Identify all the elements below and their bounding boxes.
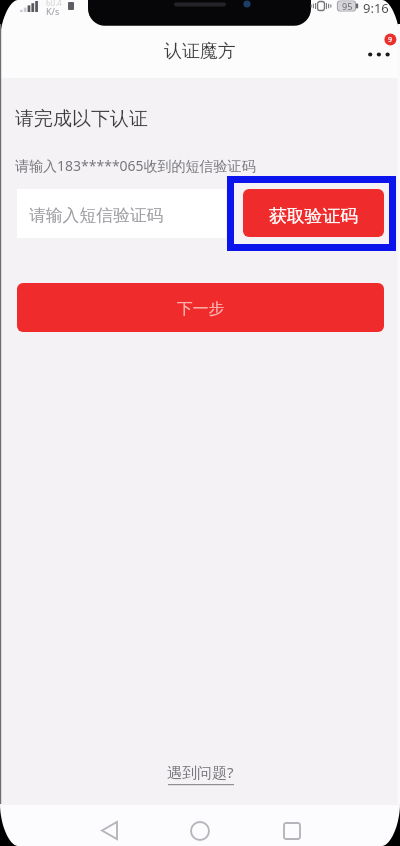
- button[interactable]: Home: [170, 810, 230, 846]
- staticText: 请输入183*****065收到的短信验证码: [15, 156, 256, 175]
- staticText: 获取验证码: [269, 205, 358, 227]
- staticText: 遇到问题?: [167, 762, 234, 782]
- button[interactable]: 下一步: [17, 283, 384, 332]
- staticText: 9: [388, 35, 393, 45]
- staticText: 60.4: [46, 0, 62, 8]
- staticText: 9:16: [363, 0, 389, 17]
- staticText: 95: [342, 0, 353, 12]
- staticText: 下一步: [177, 299, 225, 319]
- button[interactable]: More options: [358, 28, 400, 72]
- staticText: K/s: [46, 5, 60, 17]
- staticText: 请输入短信验证码: [29, 205, 164, 226]
- button[interactable]: Back: [79, 810, 139, 846]
- button[interactable]: Recent apps: [262, 810, 322, 846]
- button[interactable]: 请输入短信验证码: [17, 189, 226, 238]
- button[interactable]: 遇到问题?: [157, 758, 244, 790]
- button[interactable]: 获取验证码: [227, 176, 396, 251]
- staticText: 请完成以下认证: [15, 107, 148, 131]
- staticText: 认证魔方: [164, 40, 236, 63]
